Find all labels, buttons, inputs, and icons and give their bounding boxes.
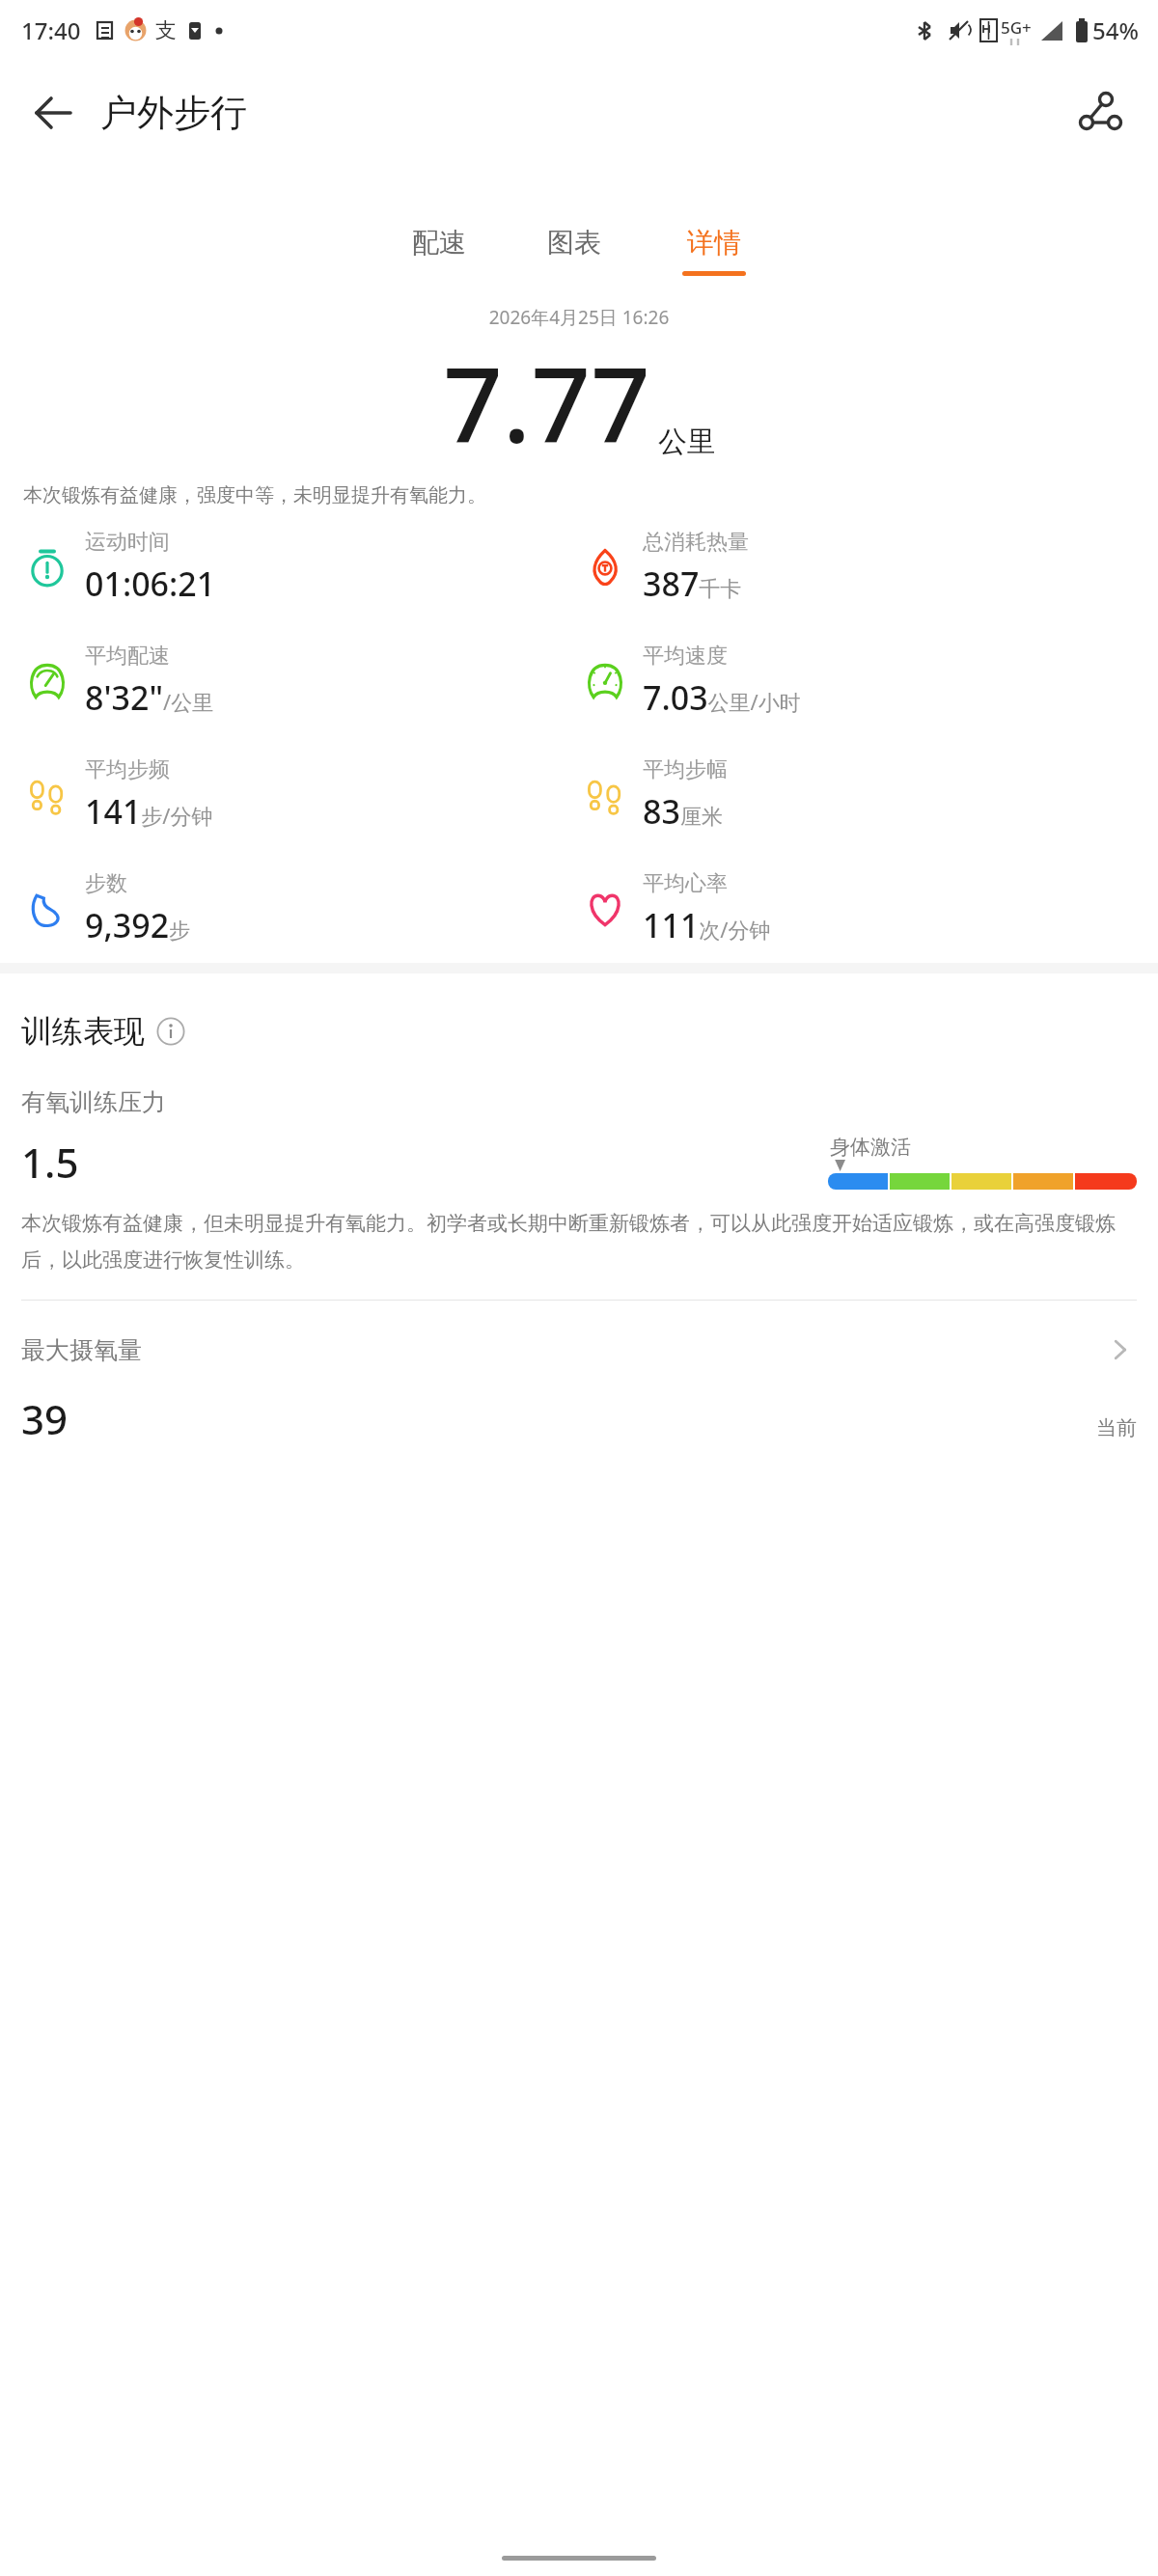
staticText: 平均步幅 [643,756,728,783]
staticText: 2026年4月25日 16:26 [0,305,1158,330]
staticText: 详情 [687,226,741,260]
button[interactable]: 平均速度 [579,643,1137,720]
button[interactable]: 训练表现 信息 [21,1012,185,1051]
button[interactable]: 总消耗热量 [579,529,1137,606]
staticText: 配速 [412,226,466,260]
button[interactable]: 配速 [397,222,482,280]
staticText: 01:06:21 [85,562,216,606]
button[interactable]: 图表 [532,222,617,280]
button[interactable]: Back [19,79,87,147]
staticText: 141步/分钟 [85,789,213,834]
button[interactable]: 平均步幅 [579,756,1137,834]
staticText: 本次锻炼有益健康，但未明显提升有氧能力。初学者或长期中断重新锻炼者，可以从此强度… [21,1211,1137,1273]
button[interactable]: 详情 [667,222,761,280]
staticText: 7.77 [443,332,650,474]
staticText: 总消耗热量 [643,529,749,556]
staticText: 17:40 [21,14,81,46]
staticText: 最大摄氧量 [21,1335,142,1365]
staticText: 平均配速 [85,643,170,670]
staticText: 5G+ [1001,16,1032,39]
button[interactable]: Share [1063,76,1137,150]
button[interactable]: 最大摄氧量 [21,1333,1137,1366]
button[interactable]: 步数 [21,870,579,947]
staticText: 83厘米 [643,789,723,834]
staticText: 有氧训练压力 [21,1087,166,1117]
button[interactable]: 平均心率 [579,870,1137,947]
staticText: 本次锻炼有益健康，强度中等，未明显提升有氧能力。 [23,483,1135,507]
button[interactable]: 平均步频 [21,756,579,834]
staticText: 39 [21,1391,69,1446]
staticText: 平均心率 [643,870,728,897]
staticText: 户外步行 [100,90,247,136]
staticText: 图表 [547,226,601,260]
staticText: 54% [1092,14,1139,46]
other: 查看详情 [1104,1333,1137,1366]
staticText: 训练表现 [21,1012,145,1051]
staticText: 公里 [658,424,716,460]
staticText: 7.03公里/小时 [643,675,801,720]
staticText: 平均速度 [643,643,728,670]
button[interactable]: 运动时间 [21,529,579,606]
button[interactable]: 平均配速 [21,643,579,720]
staticText: 9,392步 [85,903,191,947]
staticText: 步数 [85,870,127,897]
staticText: 平均步频 [85,756,170,783]
staticText: 支 [155,17,177,44]
staticText: 8'32"/公里 [85,675,214,720]
staticText: 当前 [1096,1415,1137,1440]
staticText: 身体激活 [830,1135,911,1160]
staticText: 1.5 [21,1135,79,1190]
staticText: 387千卡 [643,562,742,606]
staticText: 111次/分钟 [643,903,771,947]
staticText: 运动时间 [85,529,170,556]
